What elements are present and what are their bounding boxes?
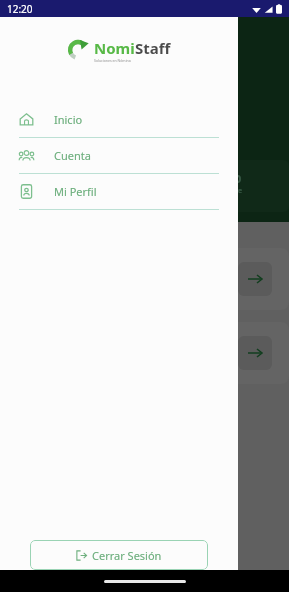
staticText: Nomi bbox=[94, 38, 135, 58]
button[interactable]: Inicio bbox=[0, 102, 238, 137]
staticText: 9e bbox=[234, 186, 242, 196]
staticText: Cerrar Sesión bbox=[92, 548, 162, 563]
staticText: Soluciones en Nómina bbox=[94, 58, 131, 63]
staticText: Cuenta bbox=[54, 148, 91, 163]
staticText: Inicio bbox=[54, 112, 83, 127]
button[interactable]: Mi Perfil bbox=[0, 174, 238, 209]
staticText: Mi Perfil bbox=[54, 184, 97, 199]
staticText: 12:20 bbox=[7, 2, 33, 16]
staticText: D bbox=[234, 172, 242, 186]
button[interactable]: Cuenta bbox=[0, 138, 238, 173]
button[interactable]: Cerrar Sesión bbox=[30, 540, 208, 570]
staticText: Staff bbox=[135, 38, 171, 58]
